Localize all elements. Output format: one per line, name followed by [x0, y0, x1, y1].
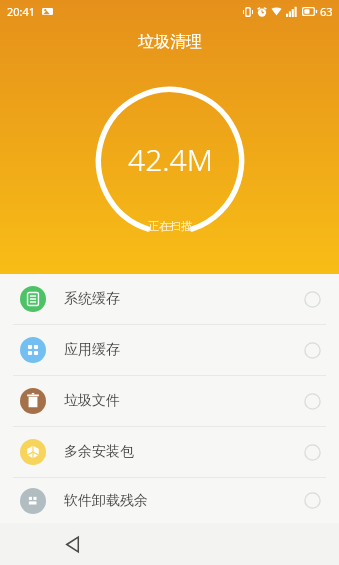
button[interactable]: Back — [55, 527, 89, 561]
staticText: 垃圾清理 — [138, 32, 202, 52]
staticText: 42.4M — [128, 139, 213, 180]
staticText: 63 — [320, 4, 333, 19]
button[interactable]: 应用缓存 — [0, 325, 339, 375]
button[interactable]: 垃圾文件 — [0, 376, 339, 426]
staticText: 软件卸载残余 — [64, 492, 148, 510]
staticText: 正在扫描 — [148, 219, 192, 233]
staticText: 系统缓存 — [64, 290, 120, 308]
button[interactable]: 系统缓存 — [0, 274, 339, 324]
button[interactable]: 多余安装包 — [0, 427, 339, 477]
staticText: 多余安装包 — [64, 443, 134, 461]
staticText: 应用缓存 — [64, 341, 120, 359]
staticText: 垃圾文件 — [64, 392, 120, 410]
button[interactable]: 软件卸载残余 — [0, 478, 339, 523]
staticText: 20:41 — [7, 4, 36, 19]
